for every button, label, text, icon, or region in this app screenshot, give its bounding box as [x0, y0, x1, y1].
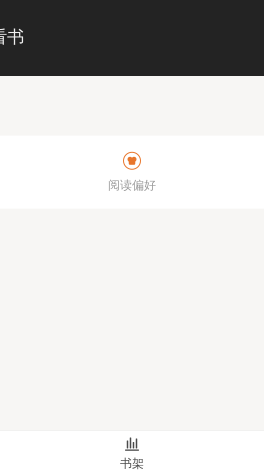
staticText: 阅读偏好 — [108, 178, 156, 192]
button[interactable]: 阅读偏好 — [53, 136, 211, 209]
button[interactable]: 书架 — [49, 431, 215, 476]
staticText: 豆豆爱看书 — [0, 26, 24, 48]
staticText: 书架 — [120, 456, 144, 471]
